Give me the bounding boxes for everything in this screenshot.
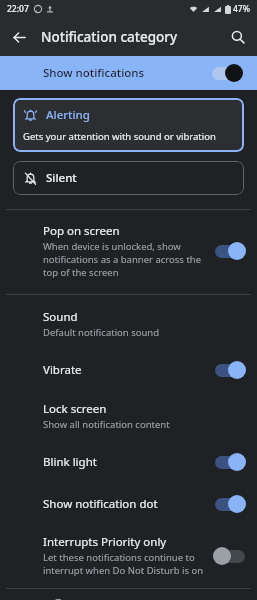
button[interactable]: Lock screen: [0, 391, 257, 441]
staticText: Notification category: [41, 28, 219, 46]
staticText: Let these notifications continue to inte…: [43, 551, 207, 577]
button[interactable]: Search: [219, 18, 257, 56]
button[interactable]: Sound: [0, 299, 257, 349]
button[interactable]: Show notification dot: [0, 483, 257, 525]
button[interactable]: Blink light: [0, 441, 257, 483]
staticText: 47%: [233, 3, 250, 15]
button[interactable]: Vibrate: [0, 349, 257, 391]
staticText: Silent: [46, 170, 77, 186]
staticText: When device is unlocked, show notificati…: [43, 240, 207, 279]
button[interactable]: Show notifications: [0, 56, 257, 90]
staticText: Default notification sound: [43, 326, 160, 339]
staticText: Sound: [43, 309, 78, 325]
staticText: Show all notification content: [43, 418, 170, 431]
staticText: Gets your attention with sound or vibrat…: [23, 130, 216, 143]
staticText: 22:07: [7, 3, 29, 15]
staticText: Show notification dot: [43, 496, 158, 512]
button[interactable]: Interrupts Priority only: [0, 525, 257, 588]
staticText: Interrupts Priority only: [43, 534, 167, 550]
staticText: Blink light: [43, 454, 97, 470]
button[interactable]: Silent: [13, 161, 244, 195]
staticText: Lock screen: [43, 401, 107, 417]
staticText: Pop on screen: [43, 223, 120, 239]
button[interactable]: Back: [0, 18, 38, 56]
staticText: Alerting: [46, 107, 90, 123]
button[interactable]: Additional settings in the app: [0, 593, 257, 600]
staticText: Show notifications: [43, 65, 210, 81]
button[interactable]: Alerting: [13, 98, 244, 152]
button[interactable]: Pop on screen: [0, 213, 257, 291]
staticText: Vibrate: [43, 362, 82, 378]
